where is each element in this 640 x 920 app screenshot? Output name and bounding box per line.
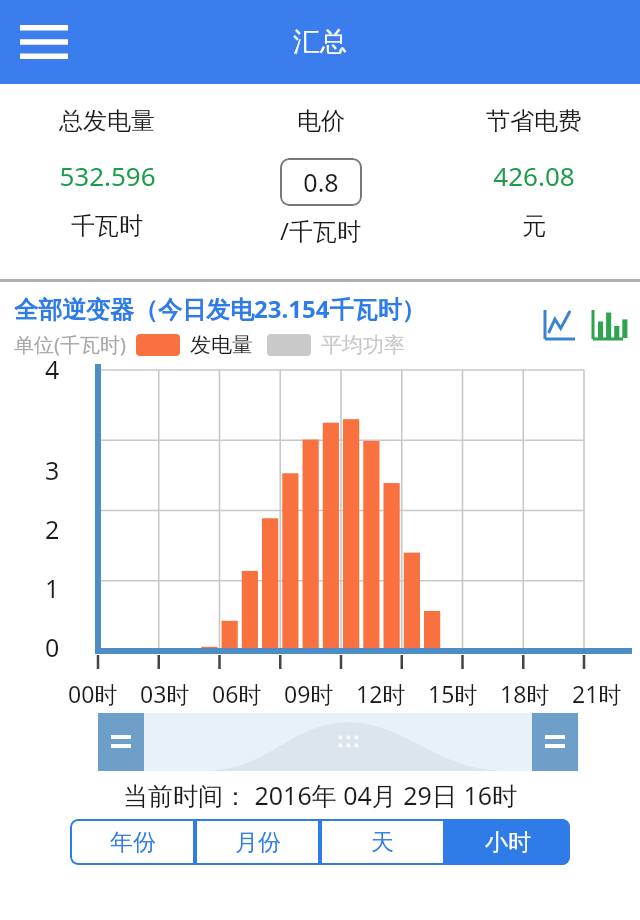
- staticText: 15时: [428, 678, 478, 709]
- staticText: /千瓦时: [280, 214, 361, 247]
- button[interactable]: [98, 713, 578, 771]
- staticText: 06时: [212, 678, 262, 709]
- button[interactable]: Line chart: [538, 303, 582, 347]
- button[interactable]: 节省电费: [427, 84, 640, 241]
- staticText: 发电量: [190, 332, 253, 358]
- staticText: 0: [45, 630, 60, 664]
- staticText: 1: [45, 571, 60, 605]
- staticText: 18时: [500, 678, 550, 709]
- button[interactable]: Bar chart: [586, 303, 630, 347]
- button[interactable]: 小时: [445, 819, 570, 865]
- button[interactable]: 月份: [195, 819, 320, 865]
- staticText: 4: [45, 352, 60, 386]
- staticText: 全部逆变器（今日发电23.154千瓦时）: [14, 292, 426, 325]
- button[interactable]: 天: [320, 819, 445, 865]
- staticText: 单位(千瓦时): [14, 331, 126, 358]
- staticText: 00时: [68, 678, 118, 709]
- staticText: 12时: [356, 678, 406, 709]
- staticText: 元: [522, 211, 546, 241]
- staticText: 当前时间： 2016年 04月 29日 16时: [123, 778, 518, 812]
- staticText: 汇总: [293, 25, 347, 59]
- staticText: 09时: [284, 678, 334, 709]
- staticText: 电价: [297, 106, 345, 136]
- button[interactable]: 总发电量: [0, 84, 214, 241]
- staticText: 426.08: [493, 158, 575, 193]
- staticText: 03时: [140, 678, 190, 709]
- staticText: 平均功率: [321, 332, 405, 358]
- staticText: 3: [45, 453, 60, 487]
- staticText: 月份: [235, 828, 281, 857]
- button[interactable]: 年份: [70, 819, 195, 865]
- staticText: 千瓦时: [71, 211, 143, 241]
- staticText: 年份: [110, 828, 156, 857]
- staticText: 小时: [485, 828, 531, 857]
- button[interactable]: 电价: [214, 84, 427, 247]
- button[interactable]: Menu: [16, 20, 72, 64]
- staticText: 21时: [572, 678, 622, 709]
- staticText: 2: [45, 512, 60, 546]
- staticText: 总发电量: [59, 106, 155, 136]
- staticText: 天: [371, 828, 394, 857]
- staticText: 532.596: [59, 158, 156, 193]
- staticText: 节省电费: [486, 106, 582, 136]
- staticText: 0.8: [303, 165, 339, 199]
